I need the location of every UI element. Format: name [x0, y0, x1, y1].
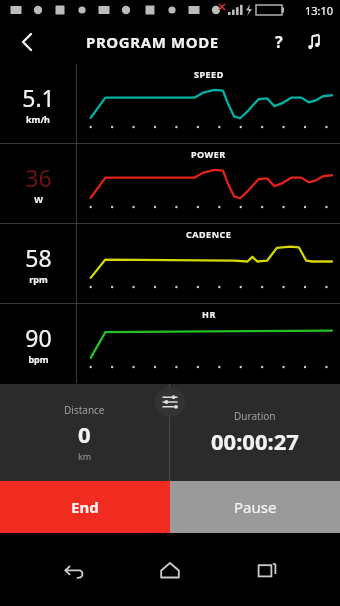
staticText: 58 — [25, 242, 52, 273]
staticText: Distance — [64, 403, 105, 417]
staticText: km/h — [26, 113, 50, 125]
staticText: POWER — [191, 148, 226, 160]
staticText: 13:10 — [305, 3, 334, 18]
staticText: PROGRAM MODE — [86, 32, 219, 52]
staticText: 00:00:27 — [211, 426, 299, 456]
staticText: 0 — [78, 419, 91, 449]
button[interactable]: Help — [264, 27, 294, 57]
button[interactable]: Home — [147, 547, 193, 593]
staticText: Duration — [234, 409, 276, 423]
button[interactable]: Recent apps — [244, 547, 290, 593]
staticText: ? — [275, 31, 283, 53]
staticText: 90 — [25, 322, 52, 353]
button[interactable]: End — [0, 481, 170, 533]
staticText: 36 — [25, 162, 52, 193]
staticText: Pause — [234, 497, 277, 517]
staticText: End — [71, 497, 99, 517]
staticText: bpm — [28, 353, 49, 365]
button[interactable]: Back — [51, 547, 97, 593]
staticText: W — [34, 193, 43, 205]
staticText: HR — [202, 308, 216, 320]
button[interactable]: Pause — [170, 481, 340, 533]
staticText: SPEED — [194, 68, 224, 80]
staticText: CADENCE — [186, 228, 232, 240]
staticText: rpm — [29, 273, 48, 285]
button[interactable]: Settings — [155, 387, 185, 417]
staticText: km — [78, 450, 92, 462]
button[interactable]: Music — [300, 27, 330, 57]
staticText: 5.1 — [22, 82, 55, 113]
button[interactable]: Back — [8, 23, 46, 61]
